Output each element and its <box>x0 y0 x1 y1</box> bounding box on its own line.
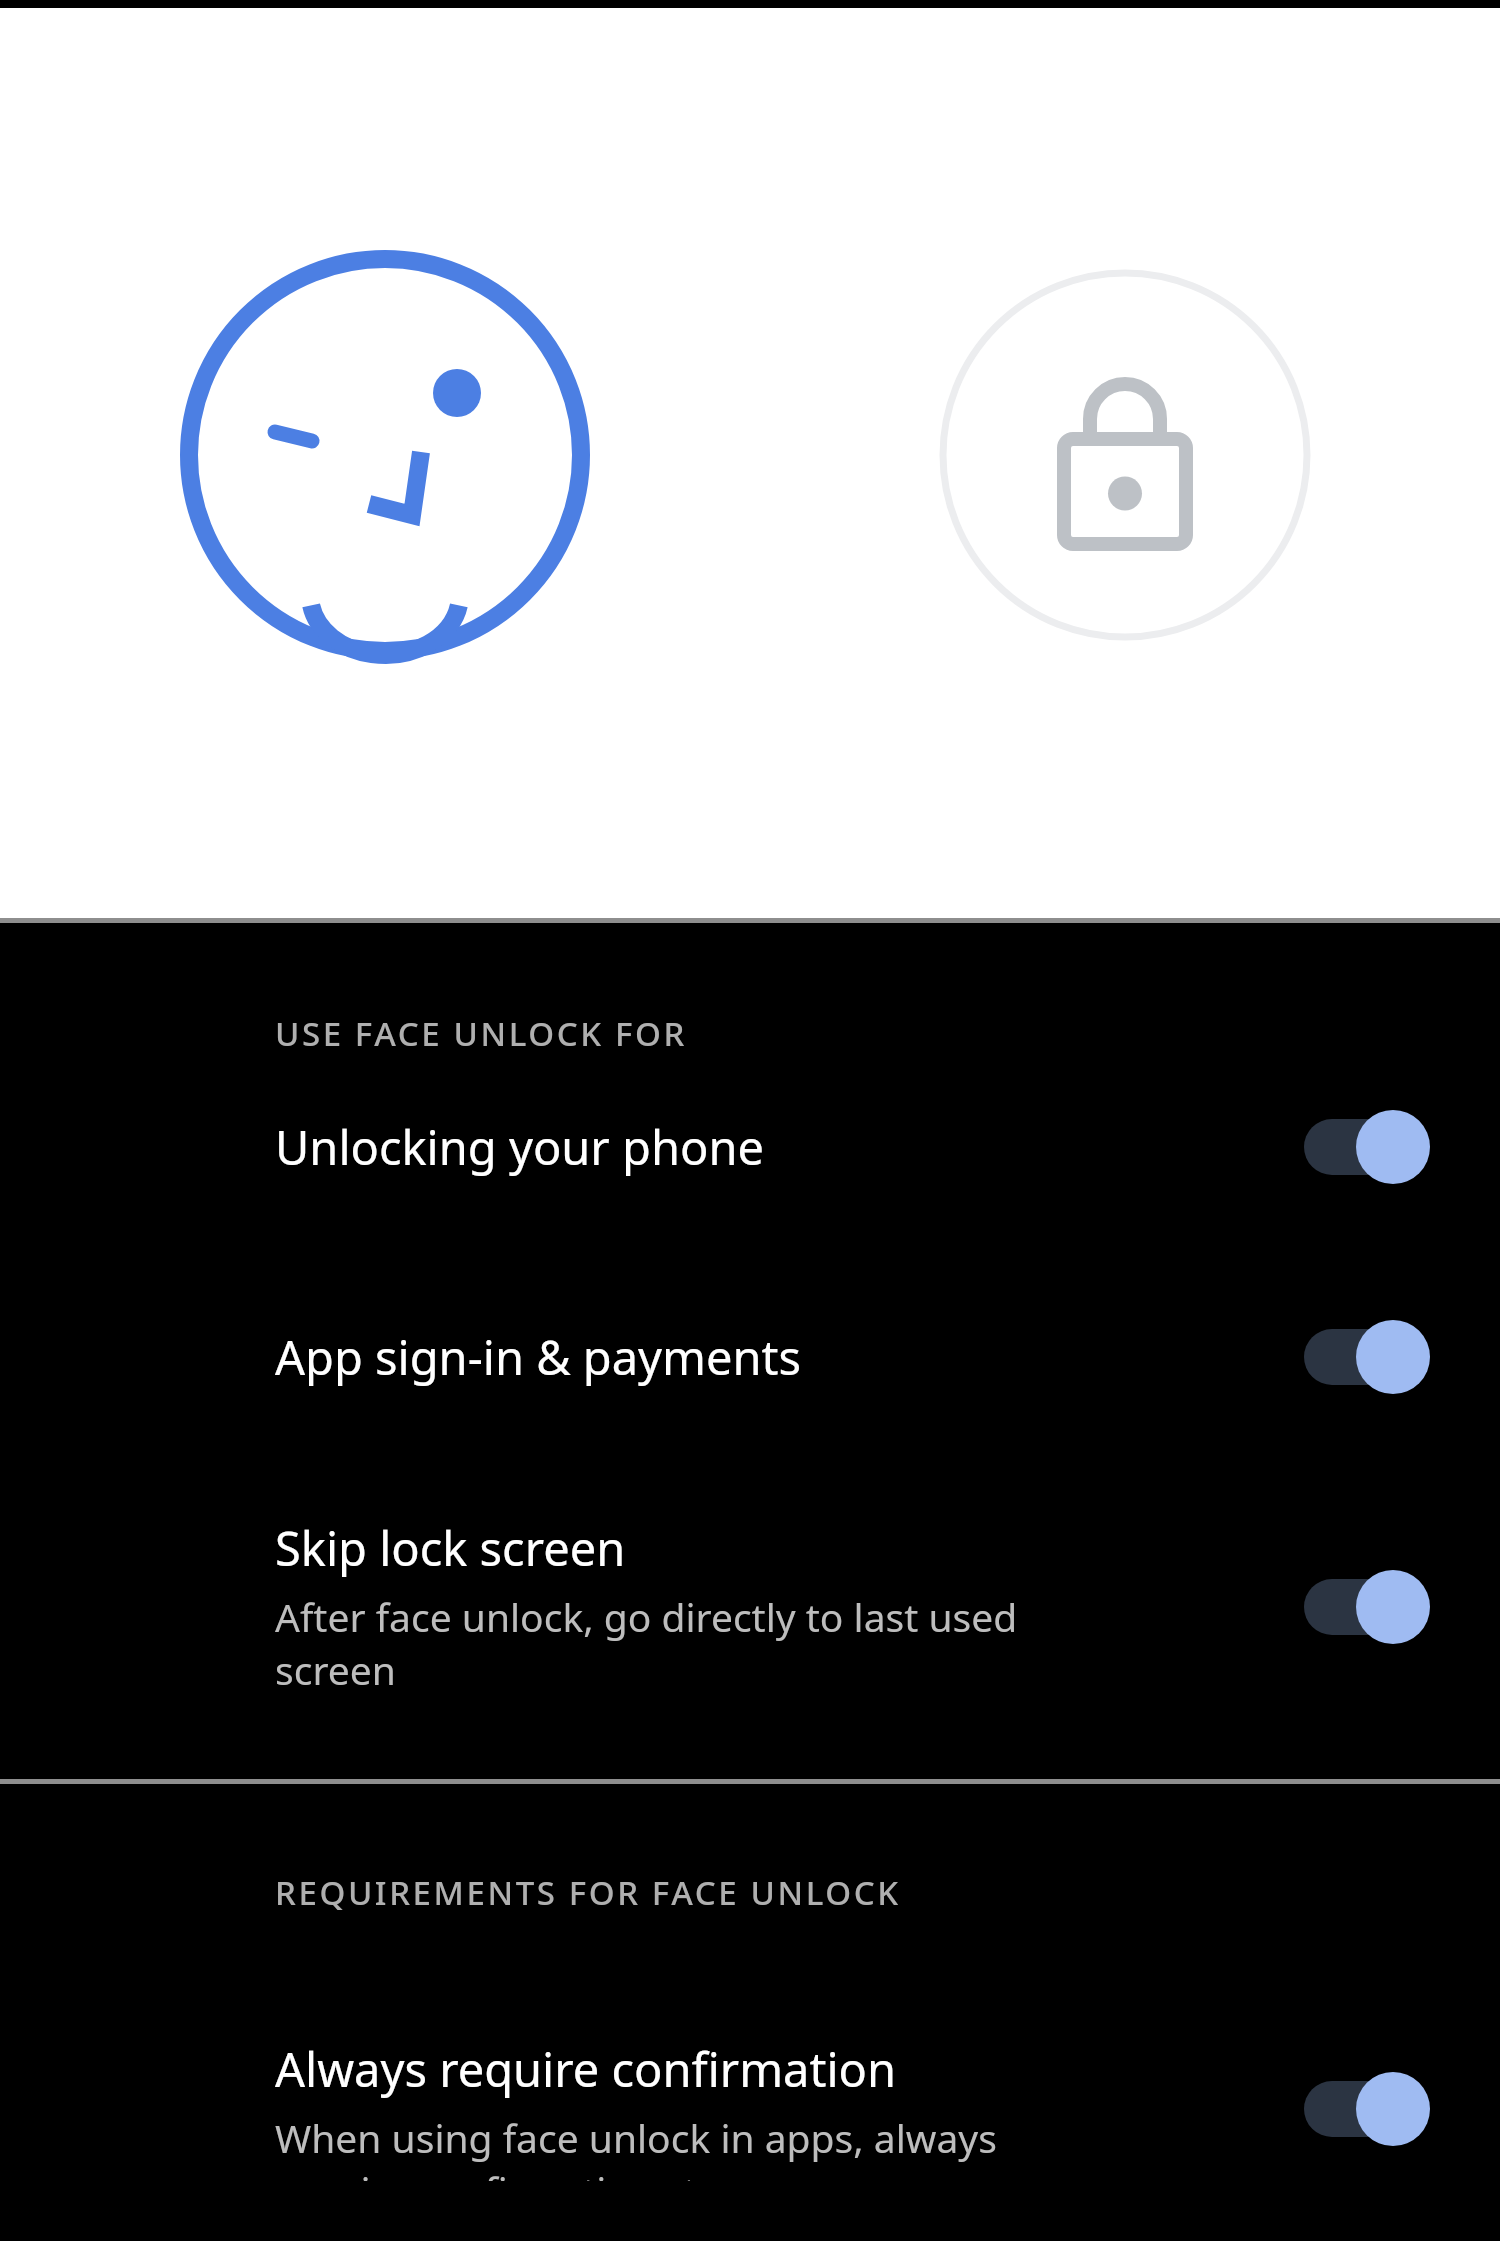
button[interactable]: Toggle setting <box>1298 2070 1430 2148</box>
button[interactable]: Toggle setting <box>1298 1568 1430 1646</box>
staticText: After face unlock, go directly to last u… <box>275 1590 1105 1697</box>
button[interactable]: Always require confirmation <box>0 1915 1500 2241</box>
staticText: Unlocking your phone <box>275 1115 764 1179</box>
staticText: App sign-in & payments <box>275 1325 802 1389</box>
button[interactable]: App sign-in & payments <box>0 1186 1500 1396</box>
button[interactable]: Toggle setting <box>1298 1108 1430 1186</box>
button[interactable]: Toggle setting <box>1298 1318 1430 1396</box>
staticText: When using face unlock in apps, always r… <box>275 2111 1105 2181</box>
staticText: REQUIREMENTS FOR FACE UNLOCK <box>275 1870 901 1915</box>
button[interactable]: Unlocking your phone <box>0 1056 1500 1186</box>
button[interactable]: Skip lock screen <box>0 1396 1500 1779</box>
staticText: USE FACE UNLOCK FOR <box>275 1011 687 1056</box>
staticText: Skip lock screen <box>275 1516 626 1580</box>
staticText: Always require confirmation <box>275 2037 897 2101</box>
